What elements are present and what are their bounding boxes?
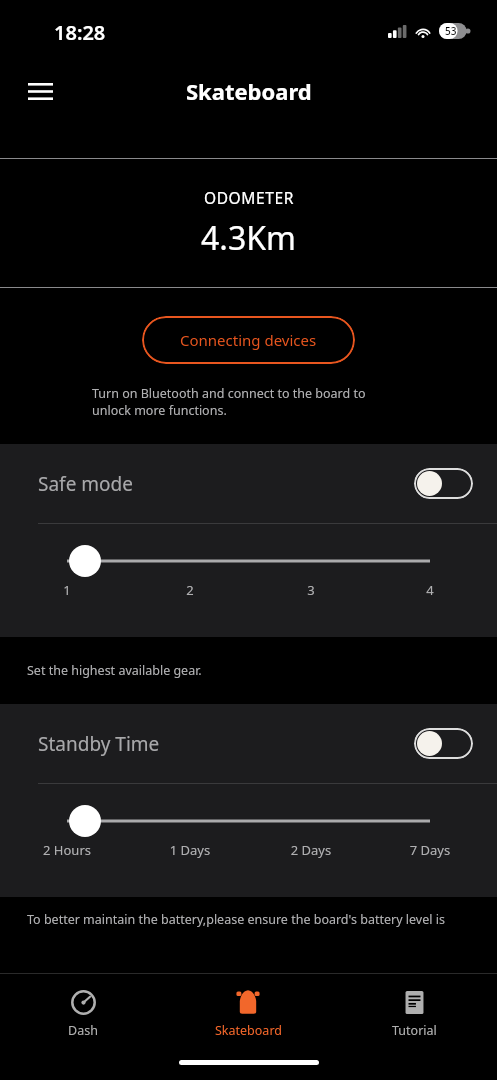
staticText: 1 Days [140, 841, 240, 859]
staticText: To better maintain the battery,please en… [27, 911, 497, 928]
staticText: 4 [380, 581, 480, 599]
button[interactable]: Connecting devices [142, 316, 355, 364]
button[interactable]: Standby Time [0, 704, 497, 783]
staticText: Connecting devices [180, 330, 317, 350]
button[interactable]: Toggle [414, 728, 473, 759]
button[interactable]: Skateboard [165, 974, 331, 1052]
staticText: Dash [68, 1022, 98, 1039]
staticText: Skateboard [186, 76, 312, 106]
staticText: ODOMETER [204, 187, 294, 208]
staticText: Turn on Bluetooth and connect to the boa… [92, 385, 405, 419]
staticText: 2 Hours [17, 841, 117, 859]
staticText: Set the highest available gear. [27, 662, 202, 679]
staticText: Tutorial [392, 1022, 437, 1039]
staticText: 2 Days [261, 841, 361, 859]
staticText: 53 [445, 24, 457, 38]
staticText: 7 Days [380, 841, 480, 859]
staticText: 4.3Km [201, 216, 296, 260]
staticText: Skateboard [215, 1022, 282, 1039]
button[interactable]: Dash [0, 974, 165, 1052]
button[interactable]: Menu [18, 69, 62, 113]
staticText: 2 [140, 581, 240, 599]
button[interactable]: Toggle [414, 468, 473, 499]
button[interactable]: Tutorial [331, 974, 497, 1052]
staticText: Safe mode [38, 471, 133, 497]
staticText: 18:28 [54, 19, 106, 46]
staticText: Standby Time [38, 731, 160, 757]
staticText: 1 [17, 581, 117, 599]
button[interactable]: Safe mode [0, 444, 497, 523]
staticText: 3 [261, 581, 361, 599]
